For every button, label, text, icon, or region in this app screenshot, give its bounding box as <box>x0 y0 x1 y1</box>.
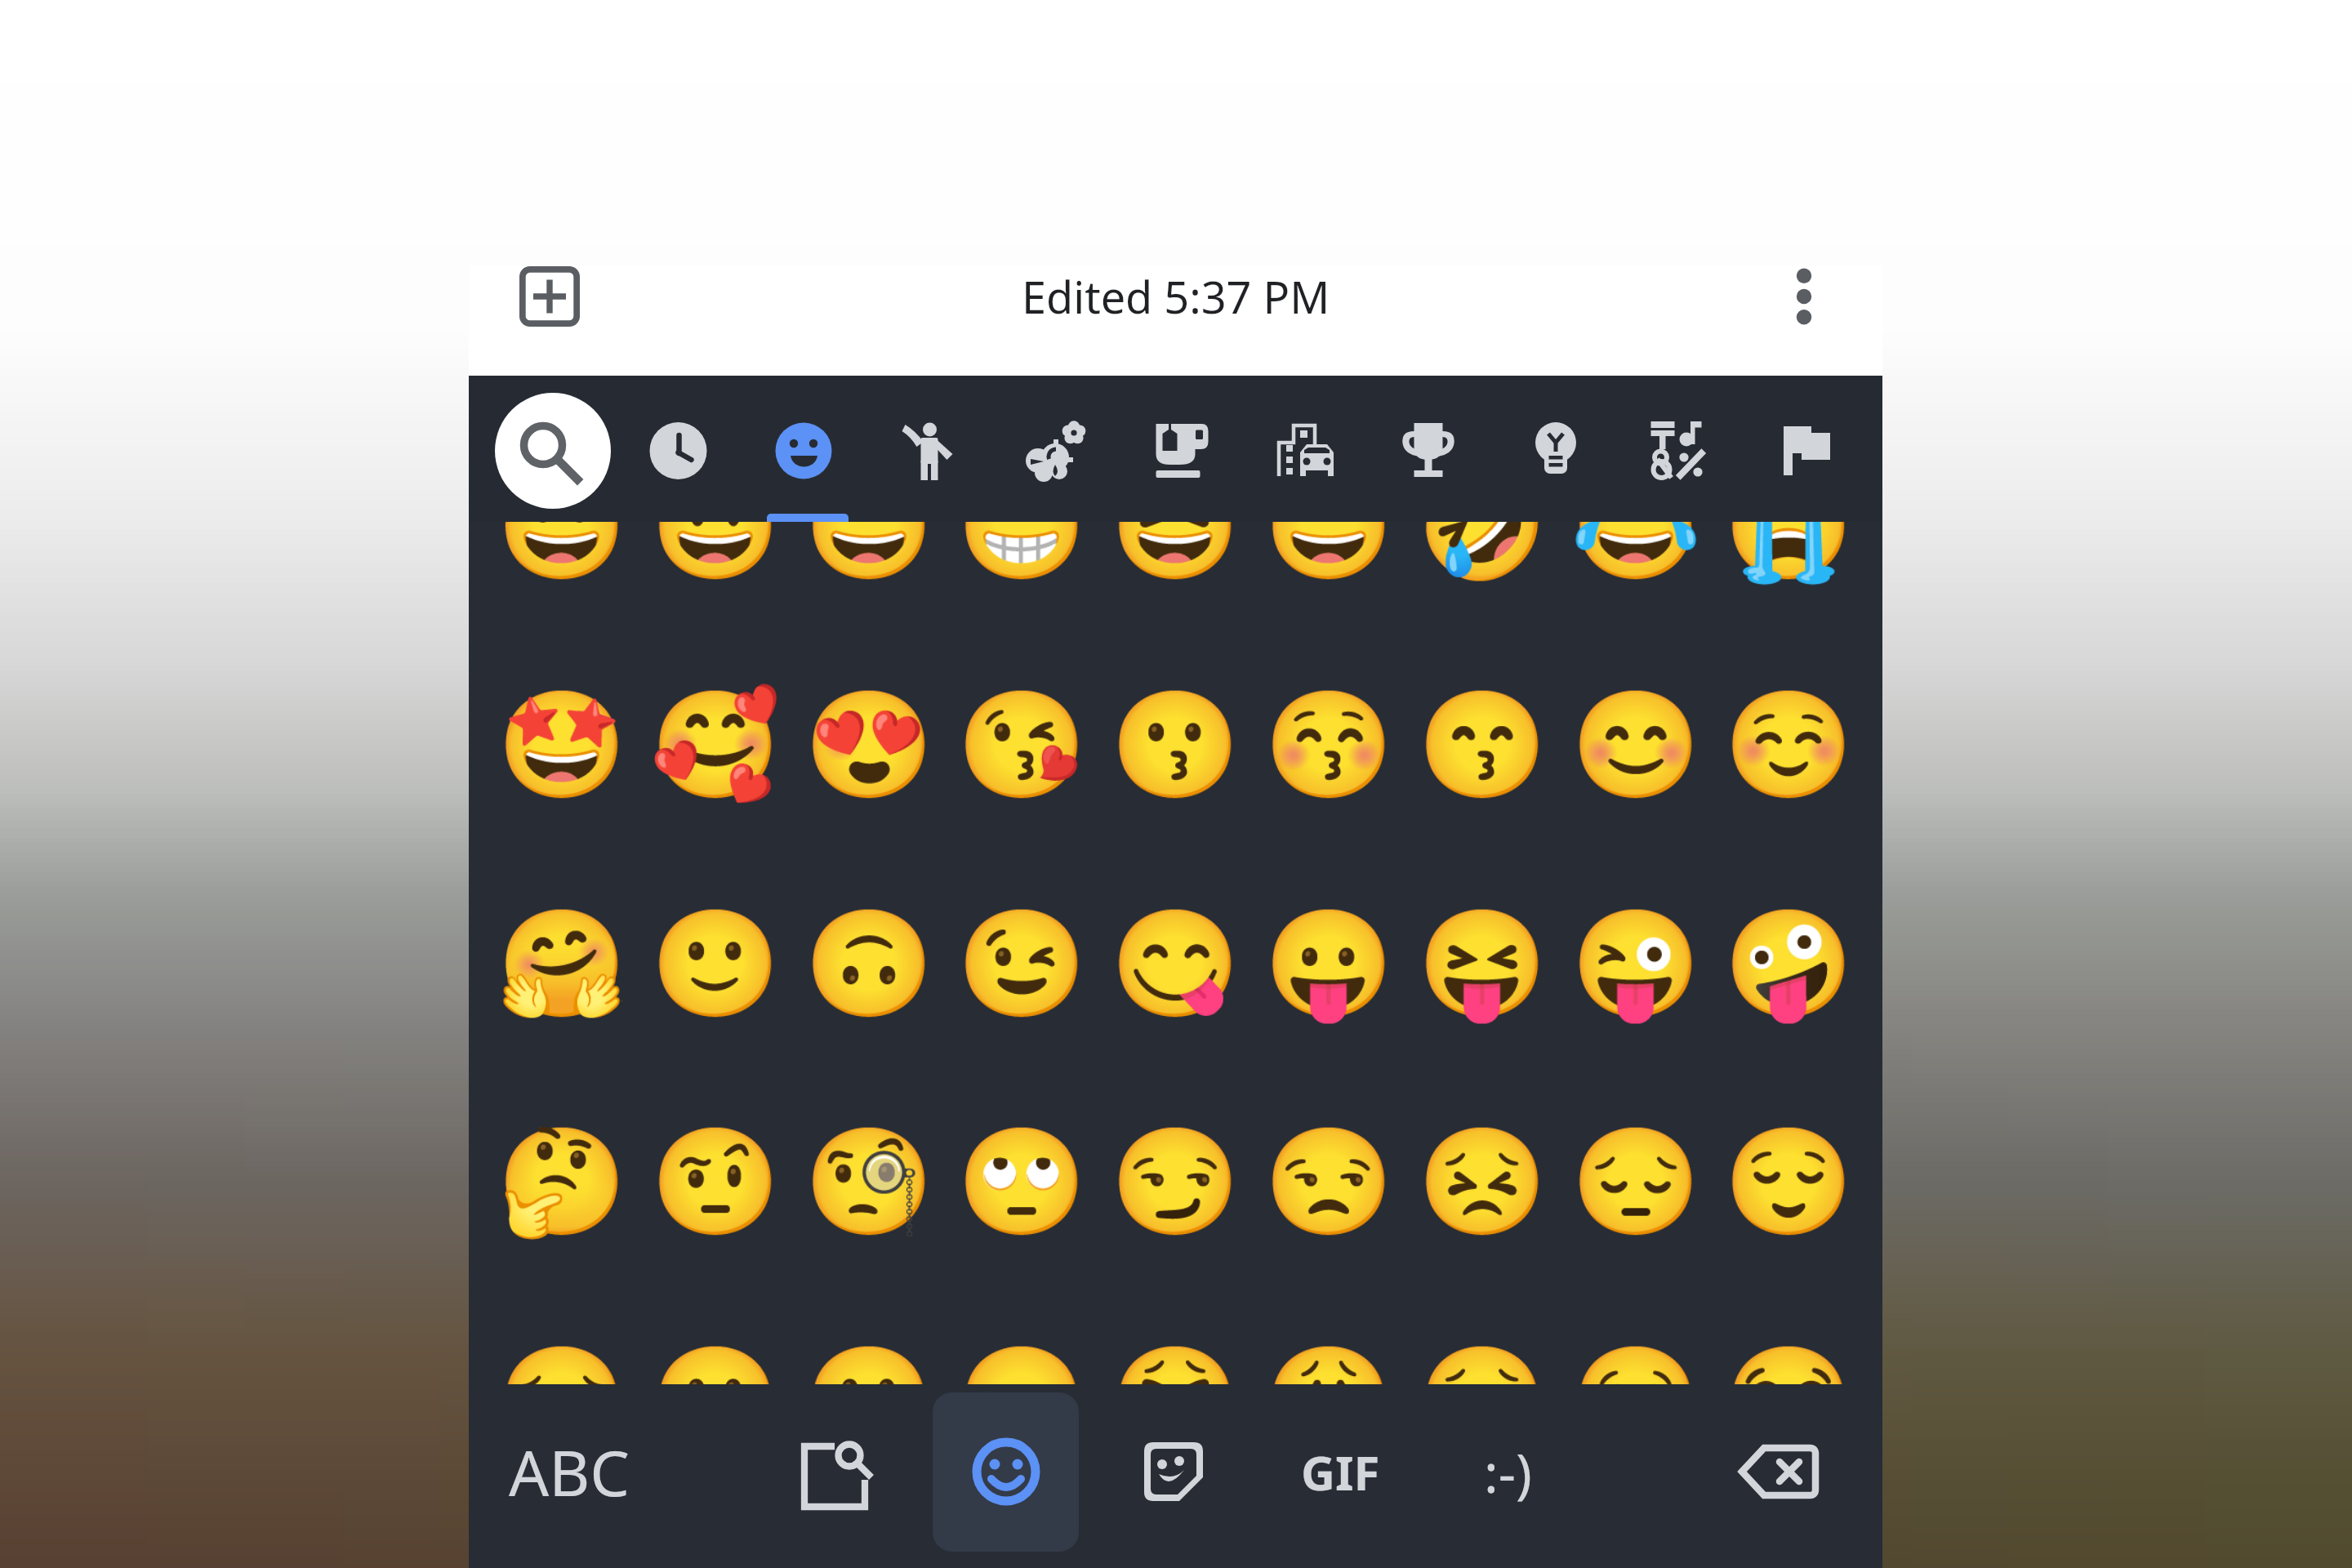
button[interactable]: Emoji ☺️ <box>1712 668 1865 822</box>
staticText: 😀 <box>497 522 627 587</box>
button[interactable]: Emoji 🤨 <box>639 1105 792 1258</box>
staticText: 🙃 <box>804 902 934 1025</box>
button[interactable]: Emoji 😂 <box>1559 522 1713 603</box>
button[interactable]: Emoji 😅 <box>1252 522 1405 603</box>
staticText: 😁 <box>956 522 1087 587</box>
button[interactable]: Smileys <box>742 385 866 510</box>
button[interactable]: Emoji 😝 <box>1405 887 1559 1040</box>
staticText: 😔 <box>1570 1120 1701 1243</box>
button[interactable]: Emoji 😌 <box>1712 1105 1865 1258</box>
staticText: 😉 <box>956 902 1087 1025</box>
staticText: 😛 <box>1263 902 1394 1025</box>
button[interactable]: GIF <box>1275 1405 1405 1539</box>
button[interactable]: Emoji 🙃 <box>792 887 946 1040</box>
button[interactable]: Emoji 😚 <box>1252 668 1405 822</box>
button[interactable]: Emoji 😛 <box>1252 887 1405 1040</box>
button[interactable]: Emoji 🙂 <box>639 887 792 1040</box>
staticText: 😋 <box>1110 902 1241 1025</box>
button[interactable]: Emoji 🙄 <box>945 1105 1098 1258</box>
staticText: 😏 <box>1110 1120 1241 1243</box>
staticText: 😢 <box>1570 1339 1701 1384</box>
button[interactable]: Emoji 😊 <box>1559 668 1713 822</box>
staticText: 😂 <box>1570 522 1701 587</box>
staticText: 😃 <box>650 522 781 587</box>
staticText: 🤔 <box>497 1120 627 1243</box>
button[interactable]: Emoji 🤔 <box>485 1105 639 1258</box>
button[interactable]: Add <box>505 252 595 341</box>
button[interactable]: Emoji 😁 <box>945 522 1098 603</box>
button[interactable]: Emoji 😒 <box>1252 1105 1405 1258</box>
staticText: GIF <box>1301 1440 1380 1504</box>
button[interactable]: Emoji 😕 <box>792 1324 946 1384</box>
button[interactable]: Emoji 🥺 <box>1405 1324 1559 1384</box>
button[interactable]: Emoji 🤣 <box>1405 522 1559 603</box>
staticText: 😘 <box>956 684 1087 806</box>
button[interactable]: Emoji 😃 <box>639 522 792 603</box>
staticText: 🙄 <box>956 1120 1087 1243</box>
button[interactable]: Emoji 😀 <box>485 522 639 603</box>
button[interactable]: Emoji 😙 <box>1405 668 1559 822</box>
button[interactable]: Emoji 😜 <box>1559 887 1713 1040</box>
button[interactable]: Emoji 🤩 <box>485 668 639 822</box>
button[interactable]: Stickers <box>1108 1405 1239 1539</box>
button[interactable]: Emoji 😔 <box>485 1324 639 1384</box>
button[interactable]: Search emoji <box>773 1405 903 1539</box>
button[interactable]: Recent <box>617 385 741 510</box>
staticText: 🤩 <box>497 684 627 806</box>
button[interactable]: Emoji 😖 <box>945 1324 1098 1384</box>
staticText: 😆 <box>1110 522 1241 587</box>
button[interactable]: Food <box>1118 385 1242 510</box>
staticText: 😩 <box>1263 1339 1394 1384</box>
staticText: 😮 <box>650 1339 781 1384</box>
staticText: 😫 <box>1110 1339 1241 1384</box>
button[interactable]: Emoji 😣 <box>1405 1105 1559 1258</box>
button[interactable]: Emoji 🤗 <box>485 887 639 1040</box>
staticText: 🥺 <box>1417 1339 1548 1384</box>
button[interactable]: Emoji 😗 <box>1098 668 1252 822</box>
button[interactable]: Emoji 😭 <box>1712 1324 1865 1384</box>
button[interactable]: Emoji <box>941 1405 1071 1539</box>
button[interactable]: Flags <box>1744 385 1869 510</box>
staticText: 😭 <box>1723 1339 1854 1384</box>
staticText: 😭 <box>1723 522 1854 587</box>
button[interactable]: Symbols <box>1619 385 1744 510</box>
staticText: :-) <box>1484 1435 1532 1508</box>
button[interactable]: Emoji 😩 <box>1252 1324 1405 1384</box>
staticText: 😄 <box>804 522 934 587</box>
button[interactable]: ABC <box>492 1421 647 1522</box>
button[interactable]: Emoji 🧐 <box>792 1105 946 1258</box>
button[interactable]: Emoji 😔 <box>1559 1105 1713 1258</box>
staticText: ABC <box>509 1429 630 1515</box>
button[interactable]: Emoji 😘 <box>945 668 1098 822</box>
button[interactable]: Search <box>491 385 615 510</box>
button[interactable]: Emoji 😉 <box>945 887 1098 1040</box>
button[interactable]: Emoji 😋 <box>1098 887 1252 1040</box>
button[interactable]: Travel <box>1243 385 1367 510</box>
button[interactable]: Emoji 🤪 <box>1712 887 1865 1040</box>
staticText: 😙 <box>1417 684 1548 806</box>
staticText: 😚 <box>1263 684 1394 806</box>
button[interactable]: Objects <box>1494 385 1618 510</box>
button[interactable]: Emoji 😍 <box>792 668 946 822</box>
button[interactable]: Emoji 😏 <box>1098 1105 1252 1258</box>
button[interactable]: Emoji 😢 <box>1559 1324 1713 1384</box>
button[interactable]: Emoji 😮 <box>639 1324 792 1384</box>
staticText: 🤨 <box>650 1120 781 1243</box>
staticText: 🤗 <box>497 902 627 1025</box>
button[interactable]: Emoji 😄 <box>792 522 946 603</box>
button[interactable]: Emoji 😆 <box>1098 522 1252 603</box>
staticText: 😌 <box>1723 1120 1854 1243</box>
button[interactable]: Backspace <box>1713 1405 1844 1539</box>
button[interactable]: People <box>867 385 991 510</box>
button[interactable]: Nature <box>992 385 1116 510</box>
staticText: 😜 <box>1570 902 1701 1025</box>
button[interactable]: More options <box>1759 252 1849 341</box>
button[interactable]: Emoji 🥰 <box>639 668 792 822</box>
button[interactable]: Emoji 😭 <box>1712 522 1865 603</box>
staticText: 😅 <box>1263 522 1394 587</box>
button[interactable]: Activities <box>1369 385 1493 510</box>
staticText: 🙂 <box>650 902 781 1025</box>
staticText: 😣 <box>1417 1120 1548 1243</box>
button[interactable]: Emoticons <box>1442 1405 1573 1539</box>
button[interactable]: Emoji 😫 <box>1098 1324 1252 1384</box>
